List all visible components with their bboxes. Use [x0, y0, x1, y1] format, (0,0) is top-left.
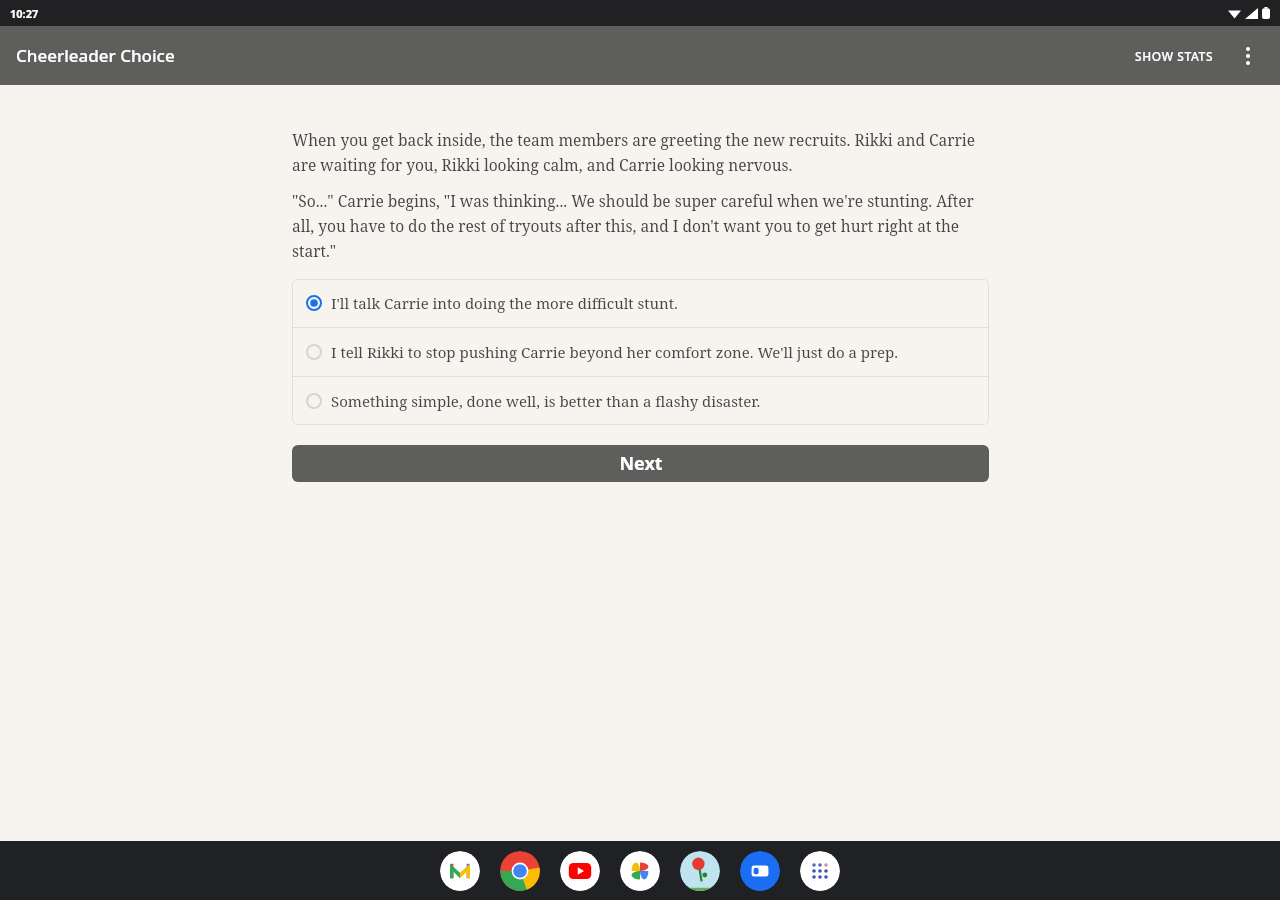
button[interactable]: I tell Rikki to stop pushing Carrie beyo…	[292, 328, 989, 376]
button[interactable]: Google Photos	[620, 851, 660, 891]
staticText: I'll talk Carrie into doing the more dif…	[331, 293, 678, 313]
button[interactable]: Chrome	[500, 851, 540, 891]
button[interactable]: Something simple, done well, is better t…	[292, 377, 989, 425]
staticText: 10:27	[10, 6, 39, 21]
staticText: "So..." Carrie begins, "I was thinking..…	[292, 190, 989, 261]
staticText: Next	[619, 451, 663, 476]
button[interactable]: Gallery	[680, 851, 720, 891]
staticText: Cheerleader Choice	[16, 44, 175, 67]
staticText: Something simple, done well, is better t…	[331, 391, 761, 411]
staticText: I tell Rikki to stop pushing Carrie beyo…	[331, 342, 899, 362]
button[interactable]: Next	[292, 445, 989, 482]
button[interactable]: Gmail	[440, 851, 480, 891]
button[interactable]: YouTube	[560, 851, 600, 891]
staticText: SHOW STATS	[1135, 48, 1214, 64]
staticText: When you get back inside, the team membe…	[292, 129, 989, 175]
button[interactable]: Messages	[740, 851, 780, 891]
button[interactable]: SHOW STATS	[1123, 34, 1226, 78]
button[interactable]: I'll talk Carrie into doing the more dif…	[292, 279, 989, 327]
button[interactable]: All apps	[800, 851, 840, 891]
button[interactable]: More options	[1226, 34, 1270, 78]
